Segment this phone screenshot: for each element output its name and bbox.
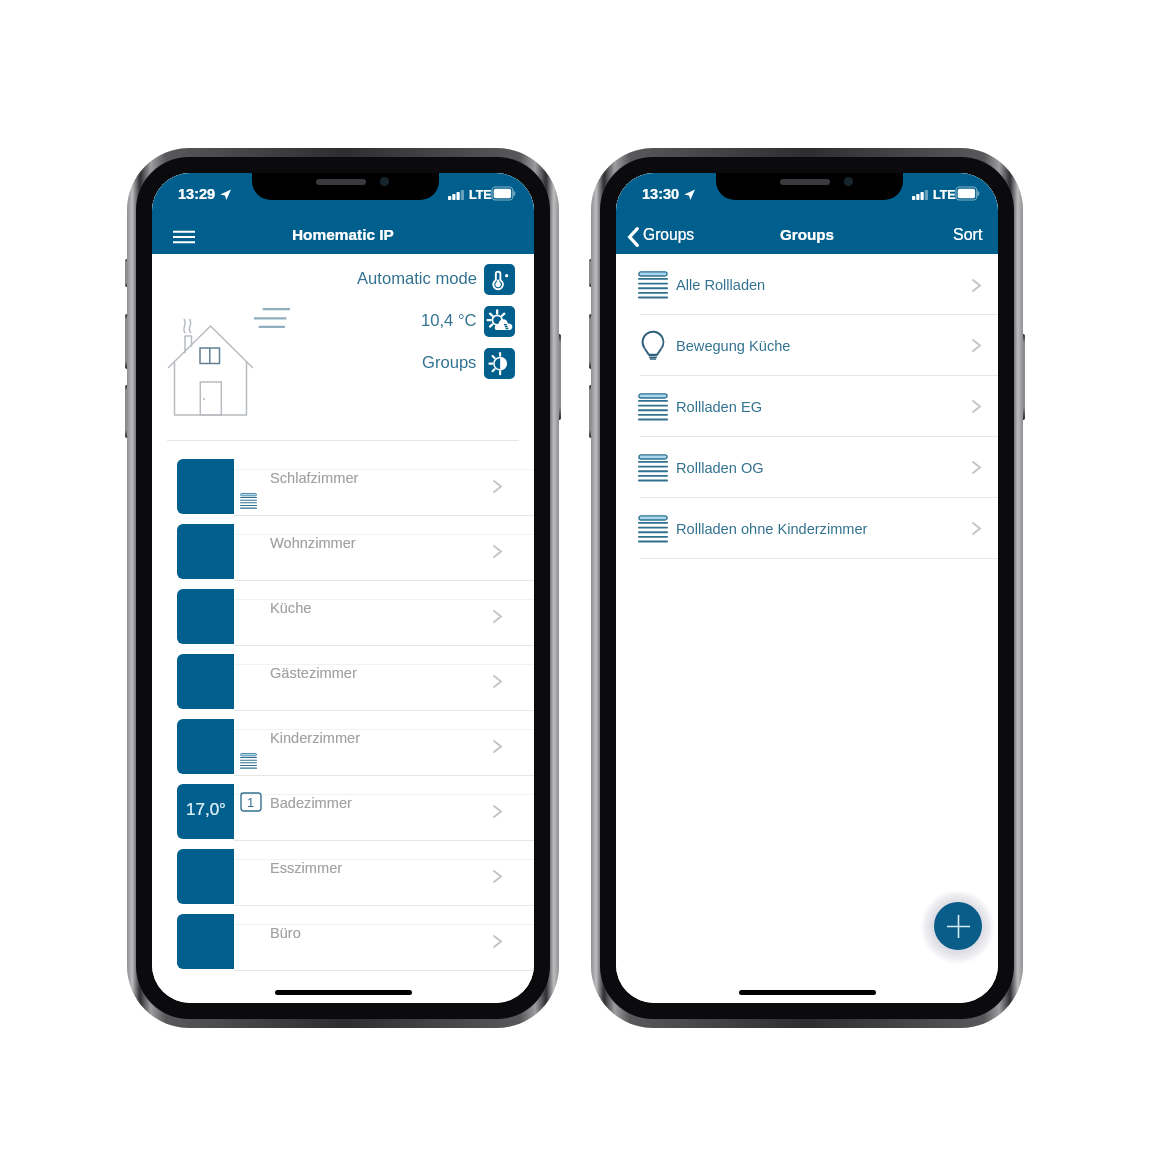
- button[interactable]: Küche: [152, 589, 534, 654]
- staticText: Rollladen EG: [676, 399, 762, 415]
- button[interactable]: 10,4 °C: [319, 306, 515, 337]
- staticText: Badezimmer: [270, 795, 352, 811]
- button[interactable]: Alle Rollladen: [616, 255, 998, 315]
- staticText: Bewegung Küche: [676, 338, 791, 354]
- staticText: Küche: [270, 600, 312, 616]
- staticText: Groups: [780, 226, 835, 243]
- staticText: Homematic IP: [292, 226, 394, 243]
- staticText: Automatic mode: [357, 269, 477, 288]
- staticText: Groups: [643, 226, 695, 243]
- button[interactable]: Gästezimmer: [152, 654, 534, 719]
- staticText: Rollladen ohne Kinderzimmer: [676, 521, 868, 537]
- button[interactable]: Kinderzimmer: [152, 719, 534, 784]
- staticText: 17,0°: [186, 800, 226, 819]
- button[interactable]: Rollladen EG: [616, 376, 998, 437]
- button[interactable]: Schlafzimmer: [152, 459, 534, 524]
- staticText: LTE: [469, 188, 492, 202]
- staticText: Wohnzimmer: [270, 535, 356, 551]
- staticText: Schlafzimmer: [270, 470, 359, 486]
- staticText: Esszimmer: [270, 860, 343, 876]
- button[interactable]: Rollladen ohne Kinderzimmer: [616, 498, 998, 559]
- staticText: Büro: [270, 925, 301, 941]
- button[interactable]: Groups: [628, 219, 695, 254]
- staticText: 1: [247, 795, 255, 810]
- staticText: Rollladen OG: [676, 460, 764, 476]
- button[interactable]: Bewegung Küche: [616, 315, 998, 376]
- button[interactable]: Büro: [152, 914, 534, 979]
- staticText: Kinderzimmer: [270, 730, 361, 746]
- staticText: 13:29: [178, 186, 216, 202]
- staticText: Sort: [953, 226, 983, 244]
- button[interactable]: Sort: [953, 219, 983, 254]
- button[interactable]: Groups: [319, 348, 515, 379]
- staticText: LTE: [933, 188, 956, 202]
- staticText: Groups: [422, 353, 477, 372]
- button[interactable]: Esszimmer: [152, 849, 534, 914]
- staticText: 13:30: [642, 186, 680, 202]
- staticText: 10,4 °C: [421, 311, 477, 330]
- button[interactable]: Automatic mode: [319, 264, 515, 295]
- button[interactable]: Menu: [162, 219, 206, 254]
- button[interactable]: Wohnzimmer: [152, 524, 534, 589]
- button[interactable]: Rollladen OG: [616, 437, 998, 498]
- button[interactable]: Add: [934, 902, 982, 950]
- staticText: Gästezimmer: [270, 665, 357, 681]
- staticText: Alle Rollladen: [676, 277, 766, 293]
- button[interactable]: 17,0°: [152, 784, 534, 849]
